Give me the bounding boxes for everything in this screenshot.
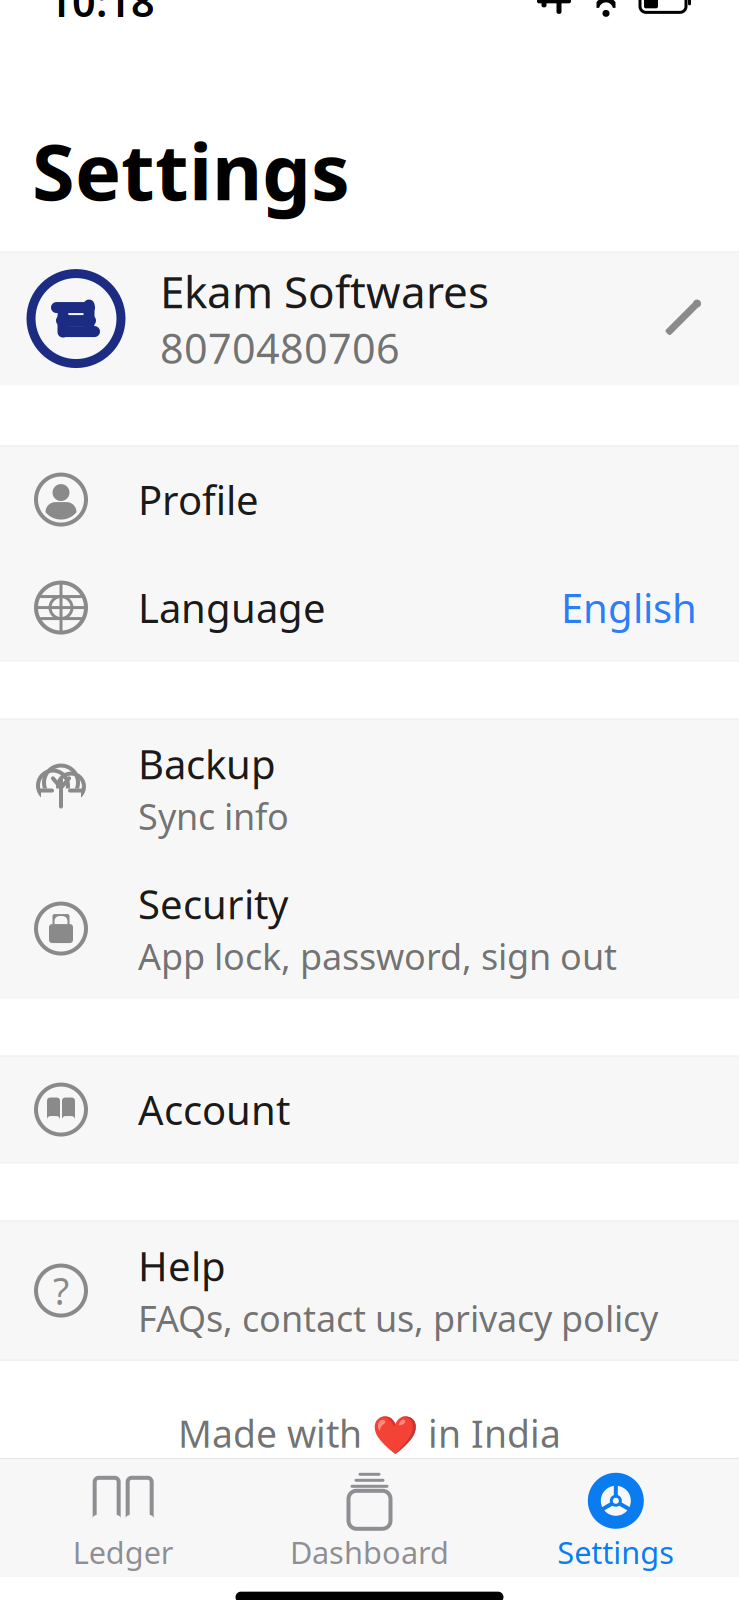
staticText: FAQs, contact us, privacy policy <box>138 1294 658 1342</box>
staticText: Backup <box>138 737 276 790</box>
staticText: Settings <box>32 119 350 222</box>
staticText: Help <box>138 1239 226 1292</box>
staticText: Profile <box>138 473 259 526</box>
staticText: Sync info <box>138 792 289 840</box>
button[interactable]: Settings <box>493 1464 739 1572</box>
button[interactable]: Security <box>0 859 739 999</box>
staticText: 8070480706 <box>160 320 400 375</box>
staticText: Made with ❤️ in India <box>178 1409 561 1458</box>
button[interactable]: Profile <box>0 446 739 554</box>
button[interactable]: Account <box>0 1056 739 1164</box>
button[interactable]: ? <box>0 1221 739 1361</box>
button[interactable]: Language <box>0 554 739 662</box>
staticText: Security <box>138 877 288 930</box>
button[interactable]: Ekam Softwares <box>0 252 739 386</box>
staticText: Language <box>138 581 326 634</box>
button[interactable]: Ledger <box>0 1464 246 1572</box>
staticText: Settings <box>557 1532 674 1572</box>
staticText: ? <box>53 1266 69 1315</box>
staticText: Ekam Softwares <box>160 262 489 320</box>
staticText: Dashboard <box>290 1532 449 1572</box>
staticText: 10:18 <box>48 0 155 28</box>
button[interactable]: Dashboard <box>246 1464 493 1572</box>
staticText: App lock, password, sign out <box>138 932 617 980</box>
button[interactable]: Backup <box>0 719 739 859</box>
staticText: Ledger <box>73 1532 174 1572</box>
staticText: Account <box>138 1083 290 1136</box>
staticText: English <box>561 581 697 634</box>
